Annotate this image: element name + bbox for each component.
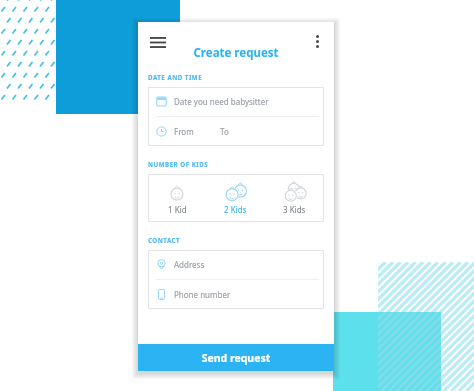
staticText: From xyxy=(174,126,194,137)
staticText: Phone number xyxy=(174,289,231,300)
button[interactable]: Date you need babysitter xyxy=(148,87,324,116)
staticText: Create request xyxy=(138,45,334,61)
staticText: NUMBER OF KIDS xyxy=(148,160,209,168)
button[interactable]: 2 Kids xyxy=(206,174,265,222)
button[interactable]: 1 Kid xyxy=(148,174,206,222)
button[interactable]: Phone number xyxy=(148,280,324,309)
staticText: DATE AND TIME xyxy=(148,73,203,81)
staticText: Address xyxy=(174,259,205,270)
staticText: 1 Kid xyxy=(168,204,187,215)
button[interactable]: Menu xyxy=(144,28,172,56)
staticText: 2 Kids xyxy=(224,204,247,215)
button[interactable]: 3 Kids xyxy=(265,174,324,222)
button[interactable]: Address xyxy=(148,250,324,279)
staticText: CONTACT xyxy=(148,236,181,244)
staticText: 3 Kids xyxy=(283,204,306,215)
button[interactable]: More options xyxy=(304,28,330,54)
staticText: To xyxy=(220,126,229,137)
staticText: Date you need babysitter xyxy=(174,96,269,107)
button[interactable]: Send request xyxy=(138,344,334,371)
staticText: Send request xyxy=(138,351,334,365)
